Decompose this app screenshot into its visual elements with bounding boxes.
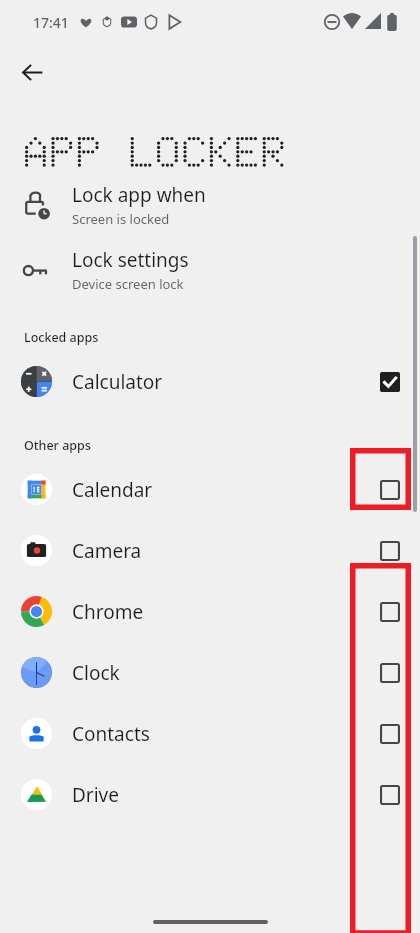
button[interactable]: Unchecked [362,706,418,762]
staticText: 17:41 [33,13,69,32]
staticText: Calendar [72,477,153,503]
staticText: Calculator [72,369,163,395]
button[interactable]: Checked [362,354,418,410]
staticText: Contacts [72,721,150,747]
button[interactable]: Drive [0,764,420,825]
button[interactable]: Unchecked [362,767,418,823]
button[interactable]: Unchecked [362,523,418,579]
button[interactable]: Contacts [0,703,420,764]
button[interactable]: Clock [0,642,420,703]
button[interactable]: Calendar [0,459,420,520]
staticText: Lock app when [72,182,206,208]
button[interactable]: Lock settings [0,237,420,302]
button[interactable]: Unchecked [362,645,418,701]
button[interactable]: Lock app when [0,172,420,237]
staticText: Other apps [24,437,91,454]
staticText: Device screen lock [72,275,184,293]
button[interactable]: Back [4,44,60,100]
button[interactable]: Calculator [0,351,420,412]
button[interactable]: Camera [0,520,420,581]
button[interactable]: Unchecked [362,462,418,518]
button[interactable]: Unchecked [362,584,418,640]
staticText: Locked apps [24,329,99,346]
staticText: Drive [72,782,119,808]
staticText: Screen is locked [72,210,170,228]
staticText: Clock [72,660,120,686]
staticText: Lock settings [72,247,189,273]
button[interactable]: Chrome [0,581,420,642]
staticText: Chrome [72,599,144,625]
staticText: Camera [72,538,142,564]
